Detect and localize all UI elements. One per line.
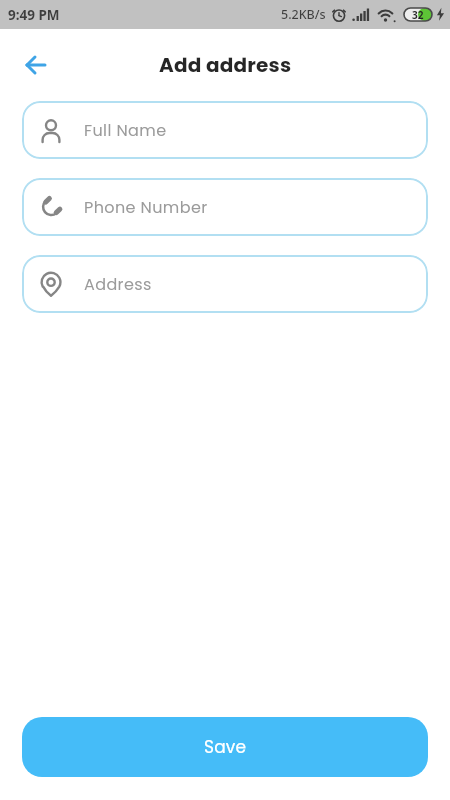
- staticText: Full Name: [84, 119, 167, 141]
- staticText: Phone Number: [84, 196, 208, 218]
- button[interactable]: Address: [22, 255, 428, 313]
- staticText: 9:49 PM: [8, 6, 60, 24]
- staticText: Address: [84, 273, 152, 295]
- button[interactable]: Phone Number: [22, 178, 428, 236]
- staticText: Save: [204, 735, 247, 759]
- staticText: Add address: [159, 51, 292, 79]
- staticText: 5.2KB/s: [281, 6, 326, 23]
- button[interactable]: Full Name: [22, 101, 428, 159]
- staticText: 32: [412, 8, 424, 22]
- button[interactable]: [14, 43, 58, 87]
- button[interactable]: Save: [22, 717, 428, 777]
